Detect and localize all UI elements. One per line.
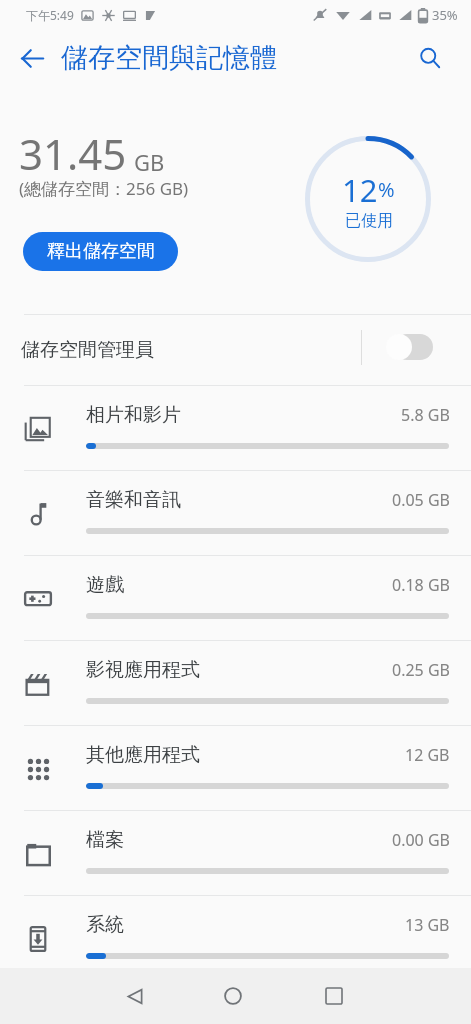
staticText: 釋出儲存空間 [47, 240, 155, 263]
button[interactable]: Recents [308, 970, 360, 1022]
button[interactable]: Home [207, 970, 259, 1022]
button[interactable]: Storage manager toggle [386, 334, 433, 360]
button[interactable]: Search [408, 36, 452, 80]
button[interactable]: 遊戲 [0, 552, 471, 637]
staticText: 12 GB [405, 744, 450, 766]
button[interactable]: 音樂和音訊 [0, 467, 471, 552]
button[interactable]: 儲存空間管理員 [0, 314, 471, 382]
staticText: GB [134, 147, 165, 177]
staticText: % [378, 176, 395, 203]
button[interactable]: Back [10, 36, 54, 80]
button[interactable]: 相片和影片 [0, 382, 471, 467]
staticText: 儲存空間管理員 [21, 338, 154, 362]
staticText: 其他應用程式 [86, 743, 200, 767]
button[interactable]: 其他應用程式 [0, 722, 471, 807]
staticText: 已使用 [345, 211, 393, 231]
staticText: 0.05 GB [392, 489, 450, 511]
staticText: 0.25 GB [392, 659, 450, 681]
staticText: 5.8 GB [401, 404, 450, 426]
staticText: 下午5:49 [26, 7, 74, 23]
staticText: 35% [432, 6, 458, 24]
staticText: 0.18 GB [392, 574, 450, 596]
button[interactable]: 釋出儲存空間 [23, 232, 178, 271]
staticText: 31.45 [19, 125, 127, 182]
staticText: 儲存空間與記憶體 [61, 41, 277, 75]
staticText: 遊戲 [86, 573, 124, 597]
staticText: 檔案 [86, 828, 124, 852]
staticText: 音樂和音訊 [86, 488, 181, 512]
staticText: 相片和影片 [86, 403, 181, 427]
staticText: 12 [342, 169, 378, 211]
staticText: 影視應用程式 [86, 658, 200, 682]
button[interactable]: Back [109, 970, 161, 1022]
button[interactable]: 系統 [0, 892, 471, 977]
staticText: 13 GB [405, 914, 450, 936]
button[interactable]: 影視應用程式 [0, 637, 471, 722]
button[interactable]: 檔案 [0, 807, 471, 892]
staticText: 系統 [86, 913, 124, 937]
staticText: 0.00 GB [392, 829, 450, 851]
staticText: (總儲存空間：256 GB) [19, 177, 189, 200]
